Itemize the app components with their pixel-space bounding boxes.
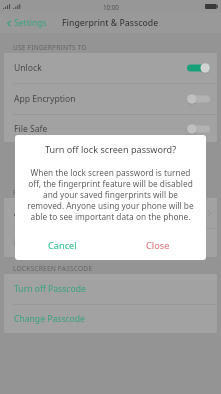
button[interactable]: Close [110,231,206,260]
staticText: Unlock [14,62,42,74]
staticText: Turn off lock screen password? [15,143,206,155]
button[interactable]: Add a fingerprint [4,198,217,228]
staticText: Cancel [48,239,77,252]
staticText: Fingerprint & Passcode [62,17,159,29]
button[interactable]: Cancel [15,231,110,260]
staticText: FINGERPRINT MANAGEMENT [13,188,108,197]
staticText: 10:00 [103,3,119,11]
button[interactable]: Unlock [4,53,217,83]
staticText: Add a fingerprint [14,207,83,219]
staticText: Turn off Passcode [14,283,86,295]
staticText: Close [146,239,170,252]
staticText: File Safe [14,123,48,135]
button[interactable]: Change Passcode [4,305,217,333]
staticText: App Encryption [14,93,76,105]
staticText: Change Passcode [14,313,85,325]
button[interactable]: File Safe [4,115,217,142]
staticText: LOCKSCREEN PASSCODE [13,264,93,273]
button[interactable]: Turn off Passcode [4,274,217,304]
button[interactable]: App Encryption [4,84,217,114]
button[interactable]: Back to Settings [0,17,51,29]
button[interactable]: Fingerprint verification [4,229,217,257]
staticText: When the lock screen password is turned … [21,167,200,222]
staticText: Fingerprint verification [14,237,107,249]
staticText: Settings [14,17,47,29]
staticText: USE FINGERPRINTS TO [13,43,87,52]
